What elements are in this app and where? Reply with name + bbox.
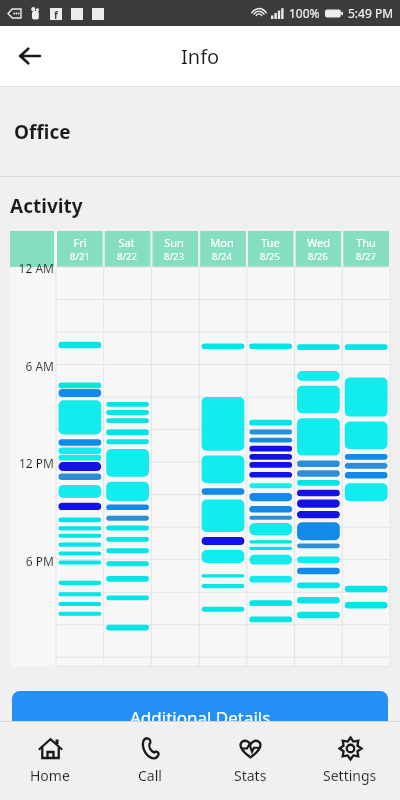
staticText: Sat [118,235,135,250]
staticText: 8/24 [212,250,232,263]
staticText: Home [30,766,70,785]
button[interactable]: Settings [300,721,400,800]
staticText: Fri [73,235,87,250]
staticText: 8/25 [260,250,280,263]
staticText: Sun [164,235,184,250]
staticText: 100% [289,5,320,21]
staticText: Mon [210,235,234,250]
staticText: Wed [307,235,330,250]
staticText: Thu [356,235,376,250]
button[interactable]: Additional Details [12,691,388,743]
staticText: 8/27 [356,250,376,263]
staticText: Additional Details [130,706,271,729]
button[interactable]: Home [0,721,100,800]
staticText: Office [14,119,71,145]
staticText: 8/21 [70,250,90,263]
staticText: 8/23 [164,250,184,263]
button[interactable]: Call [100,721,200,800]
button[interactable]: Back [6,32,54,80]
staticText: 8/22 [117,250,137,263]
staticText: Info [181,43,220,70]
staticText: 6 PM [10,553,54,569]
staticText: Call [138,766,162,785]
staticText: 12 AM [10,260,54,276]
button[interactable]: Stats [200,721,300,800]
staticText: Activity [10,193,83,219]
staticText: Tue [261,235,280,250]
staticText: 6 AM [10,358,54,374]
staticText: 5:49 PM [348,5,394,21]
staticText: 12 PM [10,455,54,471]
staticText: f [54,8,58,20]
staticText: Settings [323,766,377,785]
staticText: 8/26 [308,250,328,263]
staticText: Stats [234,766,267,785]
